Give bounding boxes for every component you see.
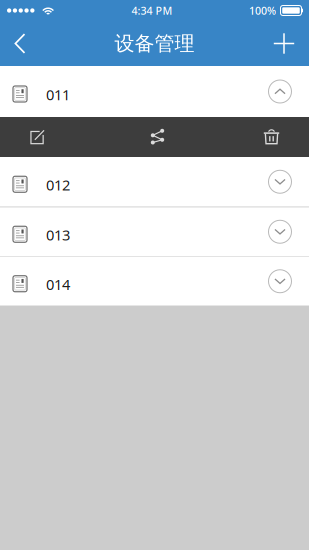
button[interactable]: Delete: [234, 117, 309, 157]
staticText: 013: [46, 225, 70, 244]
button[interactable]: 013: [0, 207, 309, 256]
staticText: 012: [46, 175, 70, 194]
button[interactable]: 012: [0, 157, 309, 206]
button[interactable]: 011: [0, 66, 309, 117]
button[interactable]: Share: [117, 117, 192, 157]
staticText: 100%: [249, 3, 276, 18]
button[interactable]: 014: [0, 257, 309, 305]
button[interactable]: Edit: [0, 117, 75, 157]
button[interactable]: Back: [0, 21, 40, 66]
staticText: 014: [46, 274, 70, 294]
button[interactable]: Add: [259, 21, 309, 66]
staticText: 4:34 PM: [131, 3, 172, 18]
staticText: 设备管理: [114, 31, 194, 56]
staticText: 011: [46, 85, 70, 104]
